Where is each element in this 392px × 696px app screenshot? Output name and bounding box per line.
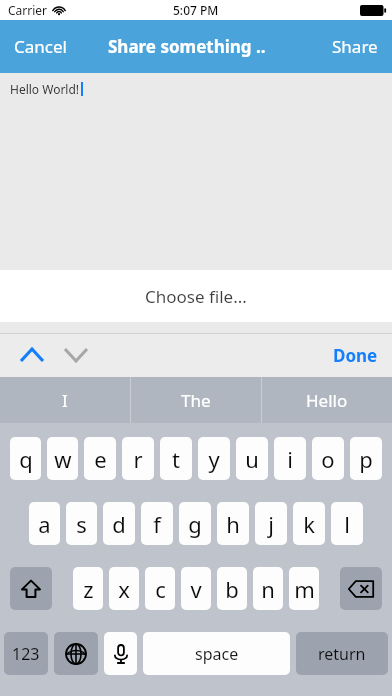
button[interactable]: Next field <box>54 337 98 373</box>
staticText: f <box>153 509 161 539</box>
staticText: Cancel <box>14 35 67 58</box>
staticText: t <box>172 444 180 474</box>
staticText: l <box>344 509 350 539</box>
staticText: p <box>359 444 373 474</box>
button[interactable]: k <box>293 502 325 545</box>
button[interactable]: t <box>160 437 192 480</box>
staticText: r <box>133 444 143 474</box>
button[interactable]: Shift <box>10 567 52 610</box>
button[interactable]: q <box>10 437 41 480</box>
button[interactable]: f <box>141 502 173 545</box>
button[interactable]: j <box>255 502 287 545</box>
button[interactable]: y <box>198 437 230 480</box>
button[interactable]: Choose file... <box>0 270 392 322</box>
button[interactable]: m <box>289 567 319 610</box>
staticText: space <box>195 643 239 665</box>
staticText: x <box>118 574 130 604</box>
staticText: Hello World! <box>10 81 80 97</box>
staticText: e <box>94 444 107 474</box>
button[interactable]: Hello <box>262 377 392 423</box>
button[interactable]: Backspace <box>340 567 382 610</box>
button[interactable]: b <box>217 567 247 610</box>
staticText: 123 <box>12 643 40 665</box>
button[interactable]: Share <box>318 25 392 68</box>
staticText: return <box>318 643 366 665</box>
button[interactable]: h <box>217 502 249 545</box>
button[interactable]: x <box>109 567 139 610</box>
button[interactable]: n <box>253 567 283 610</box>
staticText: m <box>294 574 315 604</box>
button[interactable]: Change keyboard <box>54 632 98 675</box>
staticText: I <box>62 389 68 412</box>
staticText: z <box>83 574 94 604</box>
button[interactable]: i <box>274 437 306 480</box>
staticText: Done <box>333 344 378 367</box>
button[interactable]: I <box>0 377 130 423</box>
staticText: c <box>155 574 166 604</box>
staticText: Carrier <box>8 2 48 18</box>
button[interactable]: Done <box>319 336 392 375</box>
button[interactable]: e <box>84 437 116 480</box>
staticText: w <box>54 444 72 474</box>
staticText: d <box>112 509 126 539</box>
staticText: b <box>225 574 239 604</box>
button[interactable]: r <box>122 437 154 480</box>
staticText: k <box>303 509 315 539</box>
button[interactable]: s <box>66 502 97 545</box>
button[interactable]: The <box>131 377 261 423</box>
button[interactable]: l <box>331 502 363 545</box>
staticText: Hello <box>306 389 348 412</box>
button[interactable]: Previous field <box>10 337 54 373</box>
staticText: n <box>261 574 275 604</box>
staticText: Share <box>332 35 378 58</box>
button[interactable]: v <box>181 567 211 610</box>
staticText: g <box>188 509 202 539</box>
staticText: s <box>76 509 87 539</box>
button[interactable]: Cancel <box>0 25 81 68</box>
staticText: a <box>38 509 51 539</box>
staticText: y <box>208 444 220 474</box>
staticText: j <box>268 509 274 539</box>
button[interactable]: return <box>296 632 388 675</box>
button[interactable]: d <box>103 502 135 545</box>
staticText: u <box>245 444 259 474</box>
button[interactable]: g <box>179 502 211 545</box>
button[interactable]: w <box>47 437 78 480</box>
staticText: Share something .. <box>108 35 266 58</box>
button[interactable]: a <box>29 502 60 545</box>
staticText: h <box>226 509 240 539</box>
staticText: v <box>190 574 202 604</box>
button[interactable]: space <box>143 632 290 675</box>
staticText: o <box>321 444 335 474</box>
button[interactable]: 123 <box>4 632 48 675</box>
button[interactable]: Dictation <box>104 632 137 675</box>
button[interactable]: z <box>73 567 103 610</box>
staticText: The <box>181 389 211 412</box>
staticText: i <box>287 444 293 474</box>
button[interactable]: u <box>236 437 268 480</box>
button[interactable]: o <box>312 437 344 480</box>
button[interactable]: p <box>350 437 382 480</box>
button[interactable]: c <box>145 567 175 610</box>
staticText: 5:07 PM <box>173 2 219 18</box>
staticText: Choose file... <box>145 285 247 308</box>
staticText: q <box>19 444 33 474</box>
